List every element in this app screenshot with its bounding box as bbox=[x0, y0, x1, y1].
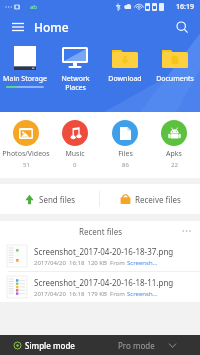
staticText: ab bbox=[30, 3, 38, 11]
staticText: 16:19 bbox=[176, 2, 194, 12]
staticText: Screenshot_2017-04-20-16-18-37.png bbox=[34, 246, 174, 257]
button[interactable]: Apks bbox=[150, 120, 198, 169]
button[interactable]: Search bbox=[172, 17, 192, 37]
button[interactable]: Documents bbox=[150, 44, 200, 84]
staticText: Screensh... bbox=[127, 290, 158, 298]
button[interactable]: Simple mode bbox=[0, 335, 100, 355]
button[interactable]: Screenshot_2017-04-20-16-18-37.png bbox=[0, 241, 200, 271]
staticText: Pro mode bbox=[118, 340, 155, 351]
staticText: 0 bbox=[73, 161, 77, 169]
staticText: Files bbox=[118, 149, 133, 159]
staticText: Main Storage bbox=[3, 74, 47, 84]
staticText: Music bbox=[65, 149, 85, 159]
staticText: Screensh... bbox=[127, 259, 158, 267]
button[interactable]: Screenshot_2017-04-20-16-18-11.png bbox=[0, 272, 200, 302]
staticText: 22 bbox=[171, 161, 178, 169]
staticText: 86 bbox=[122, 161, 129, 169]
staticText: 51 bbox=[23, 161, 30, 169]
button[interactable]: Photos/Videos bbox=[2, 120, 50, 169]
button[interactable]: Download bbox=[100, 44, 150, 84]
button[interactable]: More options bbox=[180, 224, 194, 238]
staticText: Send files bbox=[39, 194, 76, 205]
button[interactable]: Open navigation menu bbox=[8, 17, 28, 37]
staticText: 2017/04/20 16:18 179 KB From bbox=[34, 290, 127, 298]
staticText: Photos/Videos bbox=[2, 149, 50, 159]
staticText: Simple mode bbox=[25, 340, 75, 351]
staticText: Screenshot_2017-04-20-16-18-11.png bbox=[34, 277, 174, 288]
staticText: Apks bbox=[166, 149, 182, 159]
button[interactable]: Send files bbox=[0, 184, 99, 214]
button[interactable]: Files bbox=[101, 120, 149, 169]
button[interactable]: Main Storage bbox=[0, 44, 50, 88]
button[interactable]: Music bbox=[51, 120, 99, 169]
staticText: Documents bbox=[156, 74, 194, 84]
staticText: 2017/04/20 16:18 120 KB From bbox=[34, 259, 127, 267]
staticText: Home bbox=[34, 19, 69, 35]
staticText: Network Places bbox=[61, 74, 90, 92]
staticText: Download bbox=[108, 74, 142, 84]
button[interactable]: Pro mode bbox=[100, 335, 200, 355]
button[interactable]: Receive files bbox=[100, 184, 200, 214]
staticText: Recent files bbox=[79, 226, 122, 237]
staticText: Receive files bbox=[135, 194, 181, 205]
button[interactable]: Network Places bbox=[50, 44, 100, 92]
